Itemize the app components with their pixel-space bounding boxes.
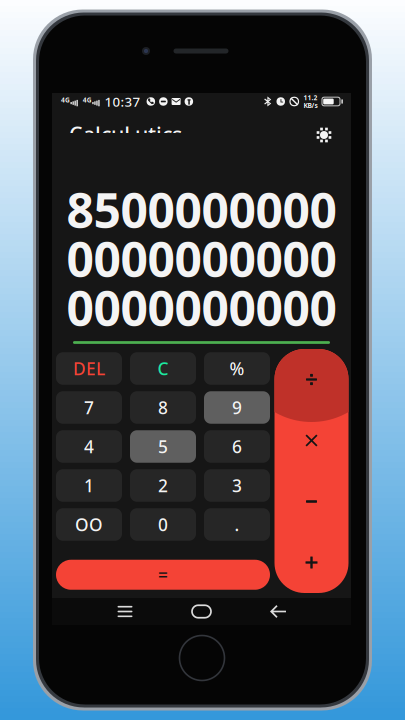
button[interactable]: % (204, 352, 270, 385)
button[interactable]: 6 (204, 430, 270, 463)
staticText: 6 (232, 435, 242, 458)
button[interactable]: OO (56, 508, 122, 541)
button[interactable]: . (204, 508, 270, 541)
staticText: CalcuLutics (69, 120, 182, 148)
staticText: 4G (61, 95, 70, 104)
button[interactable]: 4 (56, 430, 122, 463)
staticText: 2 (158, 474, 168, 497)
button[interactable]: 8 (130, 391, 196, 424)
staticText: 4G (83, 95, 92, 104)
button[interactable]: DEL (56, 352, 122, 385)
staticText: 5 (158, 435, 168, 458)
staticText: % (229, 357, 244, 380)
button[interactable]: Subtract (274, 486, 348, 517)
staticText: = (158, 563, 168, 586)
button[interactable]: C (130, 352, 196, 385)
button[interactable]: 9 (204, 391, 270, 424)
button[interactable]: Add (274, 547, 348, 578)
button[interactable]: Divide (274, 364, 348, 395)
button[interactable]: Multiply (274, 425, 348, 456)
staticText: C (157, 357, 168, 380)
button[interactable]: 7 (56, 391, 122, 424)
staticText: 1 (84, 474, 94, 497)
staticText: 9 (232, 396, 242, 419)
button[interactable]: Back (261, 599, 295, 623)
staticText: . (234, 513, 239, 536)
staticText: OO (75, 513, 103, 536)
button[interactable]: Toggle brightness (310, 121, 338, 149)
button[interactable]: Recent apps (108, 599, 142, 623)
staticText: 3 (232, 474, 242, 497)
button[interactable]: 2 (130, 469, 196, 502)
staticText: 4 (84, 435, 94, 458)
button[interactable]: 3 (204, 469, 270, 502)
button[interactable]: = (56, 560, 270, 590)
button[interactable]: 5 (130, 430, 196, 463)
staticText: KB/s (303, 101, 317, 110)
staticText: 7 (84, 396, 94, 419)
staticText: 0000000000 (66, 276, 336, 339)
staticText: 8 (158, 396, 168, 419)
staticText: DEL (73, 357, 105, 380)
staticText: 0000000000 (66, 227, 336, 290)
staticText: 10:37 (105, 93, 141, 110)
button[interactable]: 1 (56, 469, 122, 502)
staticText: 8500000000 (66, 178, 336, 241)
staticText: 11.2 (303, 93, 317, 102)
button[interactable]: Home (184, 599, 219, 623)
staticText: 0 (158, 513, 168, 536)
button[interactable]: 0 (130, 508, 196, 541)
